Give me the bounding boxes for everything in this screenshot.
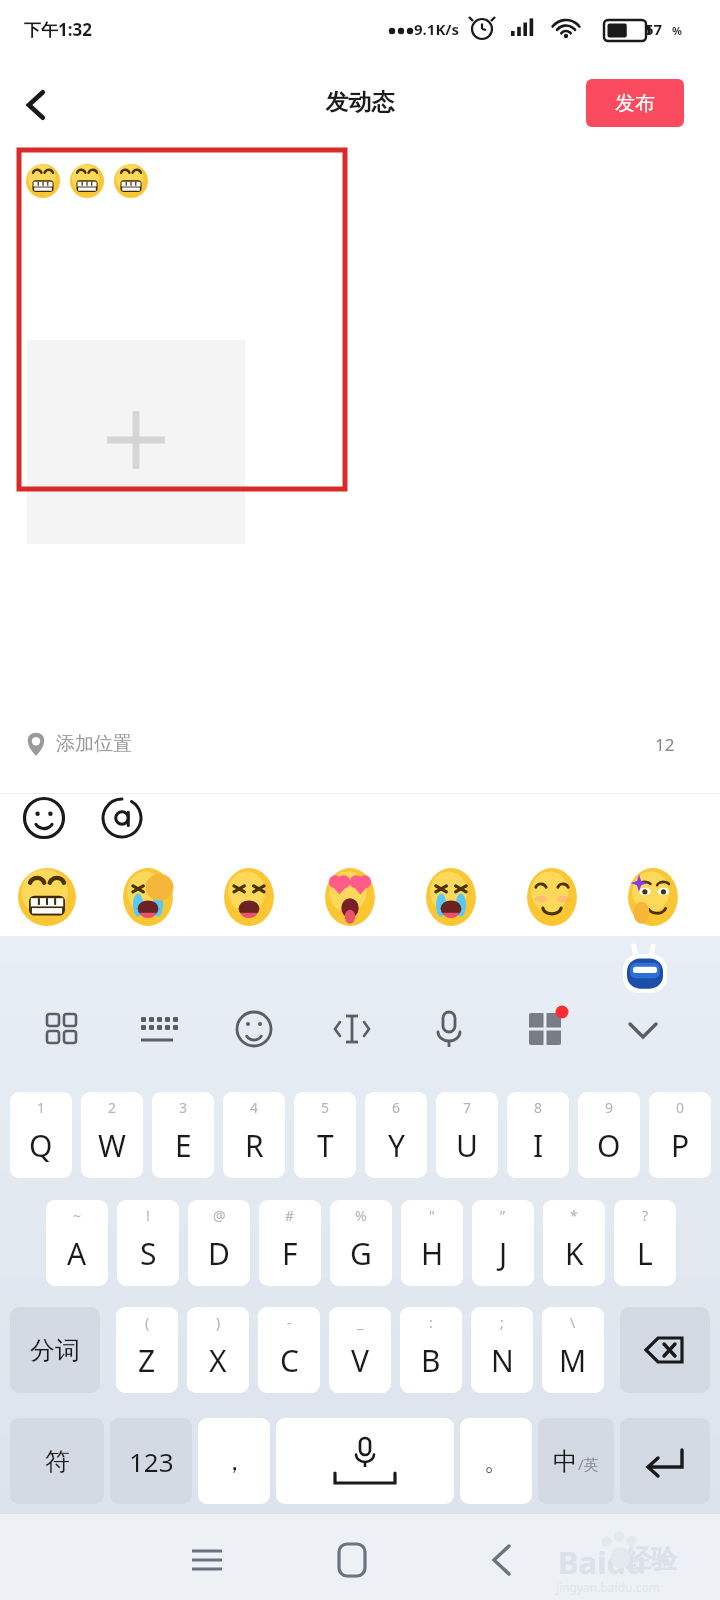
staticText: (	[145, 1313, 150, 1332]
button[interactable]: :	[400, 1307, 462, 1393]
button[interactable]: Back	[8, 76, 66, 134]
button[interactable]: Loud crying	[422, 868, 480, 926]
button[interactable]: 1	[10, 1092, 72, 1178]
staticText: W	[98, 1125, 126, 1166]
staticText: !	[146, 1206, 150, 1225]
staticText: :	[429, 1313, 433, 1332]
button[interactable]: Keyboard layout	[130, 1001, 186, 1057]
button[interactable]: 6	[365, 1092, 427, 1178]
staticText: 下午1:32	[24, 18, 92, 41]
button[interactable]: Squint laugh	[220, 868, 278, 926]
button[interactable]: Space	[276, 1418, 454, 1504]
button[interactable]: 7	[436, 1092, 498, 1178]
button[interactable]: ”	[472, 1200, 534, 1286]
button[interactable]: ，	[198, 1418, 270, 1504]
staticText: I	[533, 1125, 544, 1166]
staticText: %	[355, 1206, 367, 1225]
button[interactable]: @	[188, 1200, 250, 1286]
button[interactable]: 中	[538, 1418, 614, 1504]
button[interactable]: "	[401, 1200, 463, 1286]
button[interactable]: Blush	[523, 868, 581, 926]
staticText: 。	[484, 1446, 509, 1477]
staticText: 9	[605, 1098, 614, 1117]
button[interactable]: Apps	[34, 1001, 90, 1057]
staticText: %	[672, 23, 682, 38]
button[interactable]: *	[543, 1200, 605, 1286]
staticText: E	[175, 1125, 192, 1166]
staticText: S	[140, 1233, 157, 1274]
button[interactable]: Emoji	[226, 1001, 282, 1057]
staticText: Y	[388, 1125, 405, 1166]
button[interactable]: 9	[578, 1092, 640, 1178]
button[interactable]: _	[329, 1307, 391, 1393]
button[interactable]: 123	[110, 1418, 192, 1504]
button[interactable]: Hide keyboard	[615, 1001, 671, 1057]
staticText: J	[499, 1233, 508, 1274]
button[interactable]: !	[117, 1200, 179, 1286]
button[interactable]: Star eyes	[624, 868, 682, 926]
button[interactable]: Back	[471, 1529, 533, 1591]
button[interactable]: Home	[321, 1529, 383, 1591]
staticText: jingyan.baidu.com	[556, 1579, 660, 1595]
button[interactable]: (	[116, 1307, 178, 1393]
button[interactable]: Heart eyes	[321, 868, 379, 926]
staticText: X	[209, 1340, 227, 1381]
staticText: C	[280, 1340, 299, 1381]
button[interactable]: Grin	[18, 868, 76, 926]
staticText: /英	[578, 1454, 599, 1474]
button[interactable]: 3	[152, 1092, 214, 1178]
staticText: -	[287, 1313, 292, 1332]
staticText: *	[570, 1206, 578, 1225]
button[interactable]: -	[258, 1307, 320, 1393]
button[interactable]: Enter	[620, 1418, 710, 1504]
staticText: Z	[138, 1340, 156, 1381]
staticText: 经验	[625, 1543, 677, 1576]
staticText: 57	[645, 19, 663, 39]
staticText: 添加位置	[56, 732, 132, 756]
staticText: L	[637, 1233, 653, 1274]
staticText: 0	[676, 1098, 685, 1117]
button[interactable]: \	[542, 1307, 604, 1393]
staticText: U	[456, 1125, 478, 1166]
staticText: )	[216, 1313, 221, 1332]
staticText: ”	[500, 1206, 506, 1225]
button[interactable]: ;	[471, 1307, 533, 1393]
button[interactable]: Mention	[96, 792, 148, 844]
staticText: 中	[553, 1446, 578, 1477]
button[interactable]: 分词	[10, 1307, 100, 1393]
staticText: ~	[73, 1206, 82, 1225]
staticText: 发布	[615, 91, 655, 116]
button[interactable]: )	[187, 1307, 249, 1393]
staticText: G	[350, 1233, 372, 1274]
staticText: ;	[500, 1313, 504, 1332]
button[interactable]: 4	[223, 1092, 285, 1178]
button[interactable]: 符	[10, 1418, 104, 1504]
button[interactable]: Backspace	[620, 1307, 710, 1393]
staticText: 2	[108, 1098, 117, 1117]
button[interactable]: 。	[460, 1418, 532, 1504]
button[interactable]: 8	[507, 1092, 569, 1178]
button[interactable]: 2	[81, 1092, 143, 1178]
button[interactable]: 发布	[586, 79, 684, 127]
button[interactable]: 添加位置	[0, 716, 720, 772]
button[interactable]: Emoji	[18, 792, 70, 844]
button[interactable]: 5	[294, 1092, 356, 1178]
staticText: 符	[45, 1446, 70, 1477]
staticText: 1	[37, 1098, 46, 1117]
staticText: T	[317, 1125, 334, 1166]
button[interactable]: 0	[649, 1092, 711, 1178]
button[interactable]: Cursor	[324, 1001, 380, 1057]
button[interactable]: Recents	[176, 1529, 238, 1591]
button[interactable]: ?	[614, 1200, 676, 1286]
button[interactable]: %	[330, 1200, 392, 1286]
button[interactable]: Plugins	[517, 1001, 573, 1057]
staticText: 3	[179, 1098, 188, 1117]
button[interactable]: ~	[46, 1200, 108, 1286]
button[interactable]: Laugh with tears	[119, 868, 177, 926]
button[interactable]: #	[259, 1200, 321, 1286]
button[interactable]: Voice input	[421, 1001, 477, 1057]
staticText: H	[421, 1233, 444, 1274]
staticText: 123	[129, 1444, 174, 1479]
button[interactable]: Add photo	[27, 340, 245, 544]
staticText: 发动态	[0, 88, 720, 117]
